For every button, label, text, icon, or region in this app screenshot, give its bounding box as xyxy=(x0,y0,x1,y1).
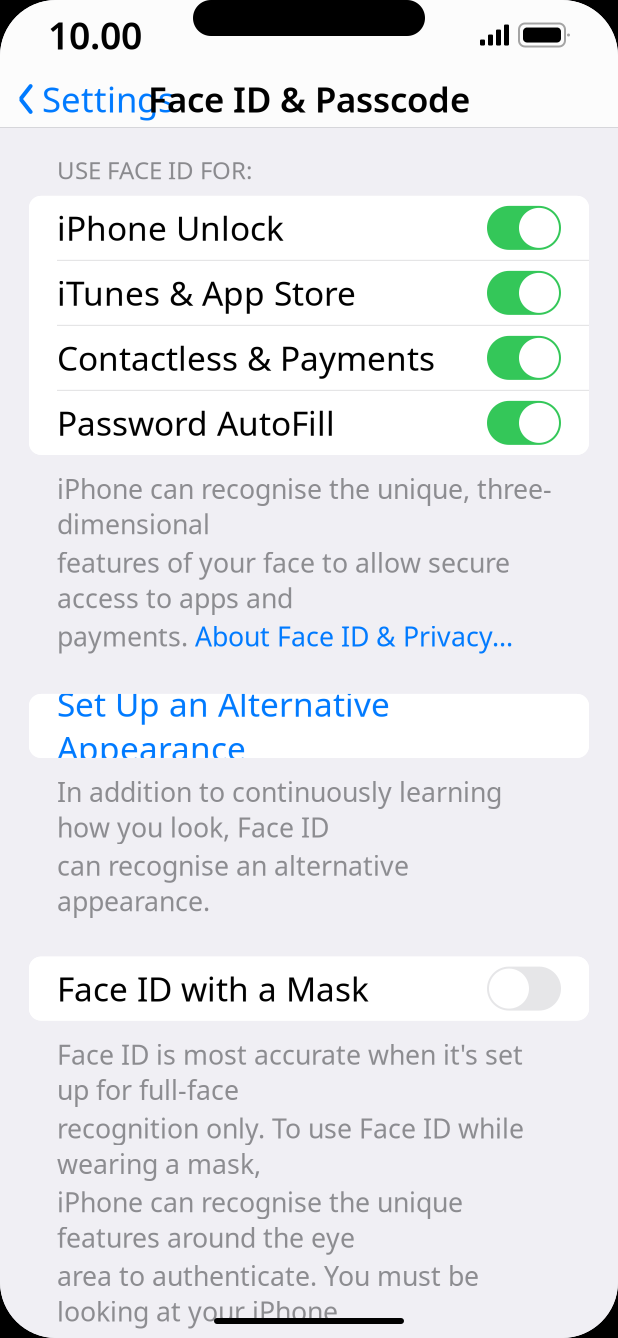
staticText: About Face ID & Privacy... xyxy=(195,618,513,654)
staticText: Face ID with a Mask xyxy=(57,966,369,1011)
button[interactable]: Face ID with a Mask xyxy=(29,957,589,1021)
staticText: area to authenticate. You must be lookin… xyxy=(57,1258,479,1329)
staticText: USE FACE ID FOR: xyxy=(57,154,252,186)
staticText: Face ID is most accurate when it's set u… xyxy=(57,1037,523,1107)
staticText: Password AutoFill xyxy=(57,401,335,445)
staticText: In addition to continuously learning how… xyxy=(57,774,502,845)
staticText: iTunes & App Store xyxy=(57,271,356,315)
button[interactable]: Settings xyxy=(0,68,175,130)
button[interactable]: Password AutoFill xyxy=(29,391,589,455)
button[interactable]: Set Up an Alternative Appearance xyxy=(29,694,589,758)
staticText: Set Up an Alternative Appearance xyxy=(57,682,390,770)
staticText: 10.00 xyxy=(48,10,142,60)
button[interactable]: iTunes & App Store xyxy=(29,261,589,325)
staticText: Settings xyxy=(42,76,175,122)
button[interactable]: Contactless & Payments xyxy=(29,326,589,390)
staticText: iPhone Unlock xyxy=(57,206,284,250)
staticText: features of your face to allow secure ac… xyxy=(57,545,510,615)
staticText: can recognise an alternative appearance. xyxy=(57,848,409,919)
staticText: iPhone can recognise the unique features… xyxy=(57,1184,463,1255)
button[interactable]: iPhone Unlock xyxy=(29,196,589,260)
button[interactable]: About Face ID & Privacy... xyxy=(195,618,513,654)
staticText: Contactless & Payments xyxy=(57,336,435,380)
staticText: recognition only. To use Face ID while w… xyxy=(57,1110,524,1181)
staticText: Face ID & Passcode xyxy=(148,76,470,122)
staticText: payments. xyxy=(57,618,195,654)
staticText: iPhone can recognise the unique, three-d… xyxy=(57,471,552,542)
